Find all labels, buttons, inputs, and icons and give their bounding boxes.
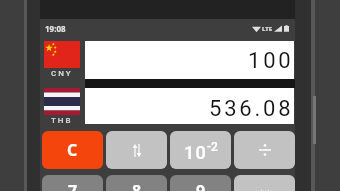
button[interactable]: 536.08 [85, 88, 294, 124]
staticText: 100 [248, 48, 294, 74]
staticText: 8 [132, 180, 142, 191]
staticText: -2 [207, 140, 218, 154]
staticText: LTE [262, 25, 273, 33]
staticText: 9 [196, 180, 206, 191]
staticText: 19:08 [45, 23, 66, 34]
button[interactable]: 8 [106, 175, 167, 191]
button[interactable]: 10 [170, 131, 231, 169]
button[interactable]: Swap currencies [106, 131, 167, 169]
button[interactable]: 7 [42, 175, 103, 191]
button[interactable]: 9 [170, 175, 231, 191]
staticText: 10 [184, 142, 207, 163]
button[interactable]: THB [44, 88, 80, 125]
staticText: C [67, 139, 78, 161]
button[interactable]: 100 [85, 41, 294, 79]
button[interactable]: C [42, 131, 103, 169]
button[interactable]: CNY [44, 41, 80, 78]
staticText: 7 [68, 180, 78, 191]
button[interactable]: Multiply [234, 175, 295, 191]
staticText: 536.08 [209, 96, 294, 122]
staticText: CNY [51, 69, 73, 78]
button[interactable]: Divide [234, 131, 295, 169]
staticText: THB [51, 116, 73, 125]
